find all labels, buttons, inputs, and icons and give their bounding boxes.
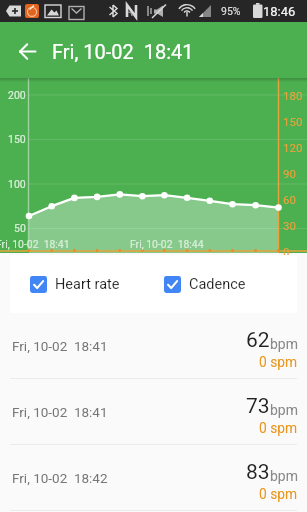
staticText: bpm xyxy=(270,402,298,418)
staticText: 150 xyxy=(283,115,303,128)
staticText: 180 xyxy=(283,89,303,102)
staticText: Fri, 10-02 18:42 xyxy=(12,470,108,486)
staticText: Fri, 10-02 18:41 xyxy=(12,338,108,354)
staticText: 50 xyxy=(14,222,26,234)
button[interactable]: Cadence xyxy=(164,276,246,293)
staticText: 150 xyxy=(8,133,26,145)
staticText: bpm xyxy=(270,468,298,484)
button[interactable]: Fri, 10-02 18:41 xyxy=(0,379,307,444)
button[interactable]: Fri, 10-02 18:41 xyxy=(0,313,307,378)
staticText: 90 xyxy=(283,167,296,180)
button[interactable]: Fri, 10-02 18:42 xyxy=(0,445,307,510)
staticText: 18:46 xyxy=(263,4,296,19)
staticText: 200 xyxy=(8,89,26,101)
staticText: 0 spm xyxy=(259,354,298,370)
staticText: Fri, 10-02 18:41 xyxy=(0,238,70,250)
staticText: Heart rate xyxy=(55,276,120,293)
staticText: 30 xyxy=(283,219,296,232)
staticText: 120 xyxy=(283,141,303,154)
staticText: bpm xyxy=(270,336,298,352)
staticText: 95% xyxy=(221,5,241,17)
staticText: 0 spm xyxy=(259,420,298,436)
staticText: 60 xyxy=(283,193,296,206)
staticText: 62 xyxy=(246,328,270,353)
staticText: Fri, 10-02 18:44 xyxy=(130,238,204,250)
staticText: 73 xyxy=(246,394,270,419)
staticText: 0 spm xyxy=(259,486,298,502)
staticText: 100 xyxy=(8,178,26,190)
staticText: 83 xyxy=(246,460,270,485)
staticText: 0 xyxy=(283,245,290,258)
button[interactable]: Heart rate xyxy=(30,276,120,293)
staticText: Fri, 10-02 18:41 xyxy=(52,40,194,63)
button[interactable]: Navigate up xyxy=(3,27,51,75)
staticText: Cadence xyxy=(189,276,246,293)
staticText: Fri, 10-02 18:41 xyxy=(12,404,108,420)
